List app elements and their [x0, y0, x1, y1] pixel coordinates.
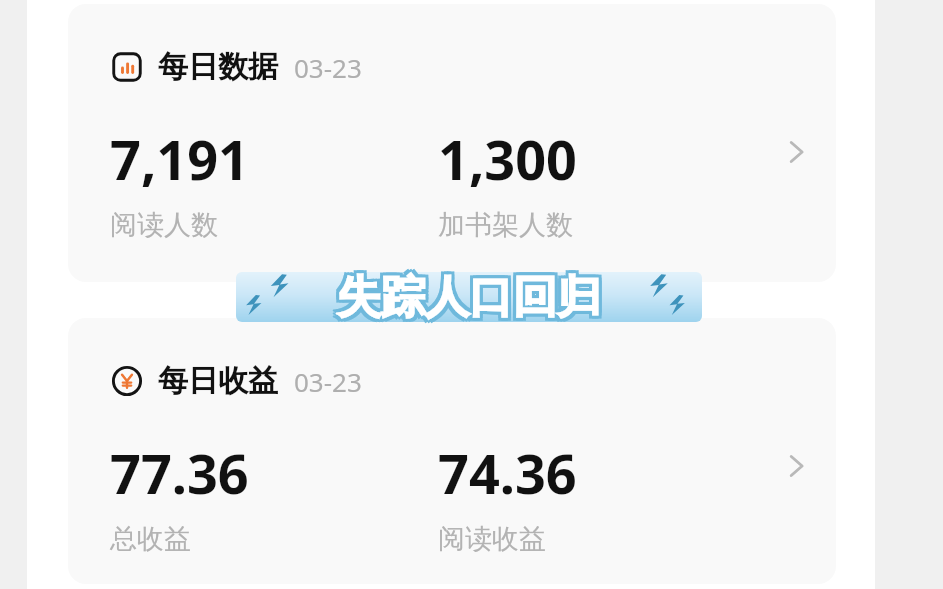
staticText: 失踪人口回归 [334, 270, 598, 325]
button[interactable]: 每日数据 [68, 4, 836, 282]
staticText: 失踪人口回归 [340, 273, 604, 328]
staticText: 加书架人数 [438, 208, 573, 242]
staticText: 失踪人口回归 [340, 270, 604, 325]
staticText: 03-23 [294, 50, 362, 85]
staticText: 1,300 [438, 122, 577, 196]
staticText: 总收益 [110, 522, 191, 556]
staticText: 失踪人口回归 [337, 267, 601, 322]
staticText: 失踪人口回归 [337, 273, 601, 328]
staticText: 失踪人口回归 [334, 273, 598, 328]
button[interactable]: 每日收益 [68, 318, 836, 584]
button[interactable]: 查看详情 [758, 114, 834, 190]
staticText: 74.36 [438, 436, 577, 510]
staticText: 阅读收益 [438, 522, 546, 556]
staticText: 失踪人口回归 [334, 267, 598, 322]
button[interactable]: 查看详情 [758, 428, 834, 504]
staticText: 7,191 [110, 122, 249, 196]
staticText: 失踪人口回归 [340, 267, 604, 322]
staticText: 阅读人数 [110, 208, 218, 242]
staticText: 每日收益 [158, 362, 278, 400]
staticText: 失踪人口回归 [337, 270, 601, 325]
staticText: 77.36 [110, 436, 249, 510]
staticText: 03-23 [294, 364, 362, 399]
staticText: 每日数据 [158, 48, 278, 86]
